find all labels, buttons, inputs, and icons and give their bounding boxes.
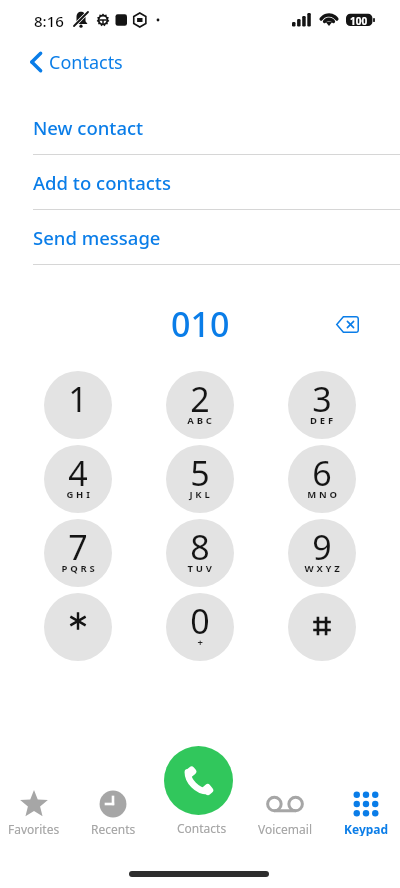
button[interactable]: 4 xyxy=(44,445,112,513)
button[interactable]: Add to contacts xyxy=(0,155,400,210)
staticText: 2 xyxy=(190,376,210,422)
staticText: 100 xyxy=(350,14,368,26)
button[interactable]: Keypad xyxy=(326,784,400,836)
staticText: 6 xyxy=(312,450,332,496)
staticText: 7 xyxy=(68,524,88,570)
button[interactable]: Send message xyxy=(0,210,400,265)
staticText: PQRS xyxy=(61,562,98,575)
staticText: Add to contacts xyxy=(33,170,171,195)
staticText: GHI xyxy=(66,488,93,501)
button[interactable]: 9 xyxy=(288,519,356,587)
button[interactable]: 3 xyxy=(288,371,356,439)
staticText: JKL xyxy=(189,488,213,501)
staticText: + xyxy=(197,636,206,649)
staticText: New contact xyxy=(33,115,144,140)
button[interactable]: 0 xyxy=(166,593,234,661)
staticText: WXYZ xyxy=(304,562,343,575)
staticText: DEF xyxy=(310,414,336,427)
staticText: 9 xyxy=(312,524,332,570)
staticText: ABC xyxy=(187,414,215,427)
staticText: 010 xyxy=(171,301,230,347)
button[interactable] xyxy=(44,593,112,661)
staticText: Keypad xyxy=(344,821,389,836)
staticText: 8 xyxy=(190,524,210,570)
staticText: Voicemail xyxy=(258,821,312,836)
button[interactable]: Voicemail xyxy=(245,784,325,836)
staticText: Send message xyxy=(33,225,161,250)
button[interactable]: 7 xyxy=(44,519,112,587)
staticText: 8:16 xyxy=(34,11,64,31)
staticText: Contacts xyxy=(49,50,123,75)
button[interactable]: Recents xyxy=(73,784,153,836)
staticText: 1 xyxy=(68,376,88,422)
button[interactable]: New contact xyxy=(0,100,400,155)
staticText: Recents xyxy=(91,821,136,836)
staticText: 5 xyxy=(190,450,210,496)
staticText: 3 xyxy=(312,376,332,422)
button[interactable]: 6 xyxy=(288,445,356,513)
button[interactable]: 5 xyxy=(166,445,234,513)
staticText: MNO xyxy=(307,488,340,501)
staticText: TUV xyxy=(187,562,215,575)
button[interactable]: Back to Contacts xyxy=(0,45,400,79)
button[interactable] xyxy=(288,593,356,661)
staticText: 0 xyxy=(190,598,210,644)
staticText: Favorites xyxy=(8,821,60,836)
button[interactable]: 1 xyxy=(44,371,112,439)
staticText: 4 xyxy=(68,450,88,496)
staticText: Contacts xyxy=(177,820,227,836)
button[interactable]: 2 xyxy=(166,371,234,439)
button[interactable]: Contacts call xyxy=(164,746,233,815)
button[interactable]: Favorites xyxy=(0,784,74,836)
button[interactable]: Backspace xyxy=(326,303,368,345)
button[interactable]: 8 xyxy=(166,519,234,587)
